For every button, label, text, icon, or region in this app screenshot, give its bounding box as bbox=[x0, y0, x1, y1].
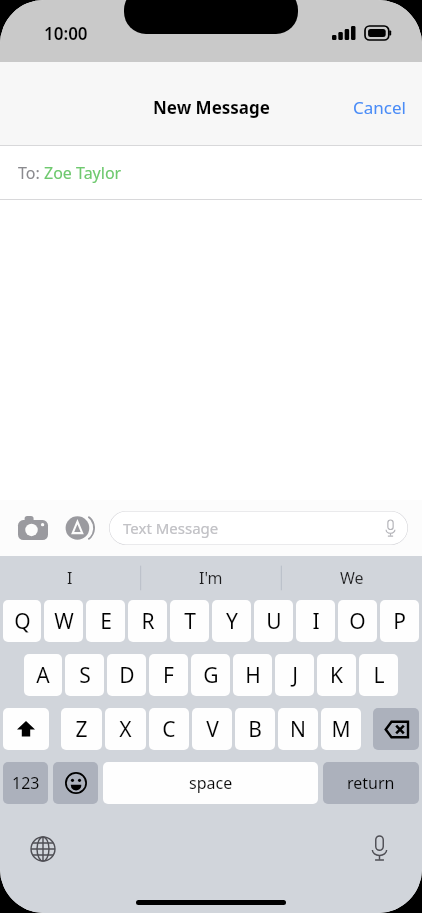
button[interactable]: Z bbox=[61, 708, 102, 750]
button[interactable]: We bbox=[281, 556, 422, 600]
staticText: V bbox=[206, 715, 219, 744]
button[interactable]: D bbox=[107, 654, 146, 696]
button[interactable]: M bbox=[321, 708, 361, 750]
button[interactable]: Switch language bbox=[26, 832, 60, 866]
staticText: G bbox=[203, 661, 219, 690]
staticText: E bbox=[100, 607, 112, 636]
button[interactable]: P bbox=[380, 600, 419, 642]
button[interactable]: Camera bbox=[14, 509, 52, 547]
button[interactable]: J bbox=[275, 654, 314, 696]
button[interactable]: return bbox=[323, 762, 419, 804]
staticText: return bbox=[347, 772, 395, 794]
button[interactable]: Cancel bbox=[337, 86, 422, 129]
button[interactable]: L bbox=[359, 654, 398, 696]
button[interactable]: I bbox=[0, 556, 140, 600]
staticText: U bbox=[266, 607, 282, 636]
staticText: W bbox=[54, 607, 74, 636]
button[interactable]: Shift bbox=[3, 708, 49, 750]
button[interactable]: G bbox=[191, 654, 230, 696]
button[interactable]: space bbox=[103, 762, 318, 804]
button[interactable]: N bbox=[278, 708, 318, 750]
button[interactable]: Y bbox=[212, 600, 251, 642]
button[interactable]: Text Message bbox=[109, 511, 408, 545]
button[interactable]: H bbox=[233, 654, 272, 696]
button[interactable]: Emoji bbox=[53, 762, 98, 804]
button[interactable]: U bbox=[254, 600, 293, 642]
button[interactable]: K bbox=[317, 654, 356, 696]
staticText: O bbox=[349, 607, 366, 636]
staticText: Z bbox=[75, 715, 88, 744]
staticText: F bbox=[163, 661, 174, 690]
button[interactable]: T bbox=[170, 600, 209, 642]
staticText: P bbox=[393, 607, 406, 636]
staticText: S bbox=[79, 661, 91, 690]
staticText: X bbox=[119, 715, 132, 744]
staticText: I'm bbox=[199, 567, 223, 589]
button[interactable]: Dictate bbox=[362, 832, 396, 866]
staticText: J bbox=[292, 661, 298, 690]
button[interactable]: Q bbox=[3, 600, 41, 642]
staticText: 123 bbox=[12, 772, 40, 794]
button[interactable]: B bbox=[235, 708, 275, 750]
staticText: T bbox=[184, 607, 196, 636]
staticText: L bbox=[373, 661, 385, 690]
button[interactable]: W bbox=[44, 600, 83, 642]
button[interactable]: C bbox=[149, 708, 189, 750]
staticText: D bbox=[119, 661, 135, 690]
button[interactable]: X bbox=[105, 708, 146, 750]
button[interactable]: R bbox=[128, 600, 167, 642]
staticText: Y bbox=[226, 607, 238, 636]
button[interactable]: I'm bbox=[140, 556, 281, 600]
staticText: space bbox=[189, 772, 233, 794]
staticText: Zoe Taylor bbox=[44, 162, 122, 184]
button[interactable]: E bbox=[86, 600, 125, 642]
button[interactable]: A bbox=[24, 654, 62, 696]
staticText: H bbox=[245, 661, 261, 690]
staticText: Q bbox=[14, 607, 31, 636]
staticText: A bbox=[36, 661, 50, 690]
staticText: 10:00 bbox=[44, 22, 88, 45]
staticText: N bbox=[290, 715, 306, 744]
button[interactable]: To: bbox=[0, 146, 422, 200]
button[interactable]: I bbox=[296, 600, 335, 642]
staticText: Text Message bbox=[123, 518, 219, 538]
button[interactable]: Apps bbox=[61, 509, 99, 547]
staticText: To: bbox=[18, 162, 44, 184]
staticText: New Message bbox=[153, 96, 270, 119]
staticText: R bbox=[141, 607, 155, 636]
button[interactable]: F bbox=[149, 654, 188, 696]
button[interactable]: O bbox=[338, 600, 377, 642]
button[interactable]: S bbox=[65, 654, 104, 696]
staticText: I bbox=[312, 607, 320, 636]
staticText: I bbox=[67, 567, 73, 589]
staticText: Cancel bbox=[353, 96, 406, 119]
staticText: We bbox=[340, 567, 364, 589]
staticText: M bbox=[331, 715, 351, 744]
button[interactable]: Backspace bbox=[373, 708, 419, 750]
staticText: C bbox=[162, 715, 176, 744]
button[interactable]: V bbox=[192, 708, 232, 750]
staticText: K bbox=[330, 661, 343, 690]
button[interactable]: 123 bbox=[3, 762, 48, 804]
staticText: B bbox=[248, 715, 262, 744]
